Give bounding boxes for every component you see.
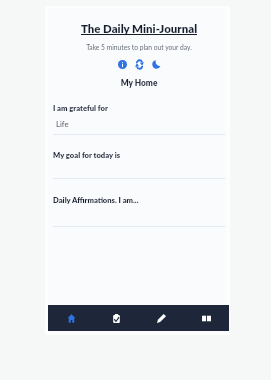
staticText: Daily Affirmations. I am... <box>53 195 139 204</box>
button[interactable]: Tasks <box>94 305 139 331</box>
button[interactable]: Information <box>118 60 127 69</box>
staticText: My goal for today is <box>53 150 121 159</box>
button[interactable]: Daily Affirmations. I am... <box>53 195 139 204</box>
staticText: The Daily Mini-Journal <box>48 22 230 36</box>
staticText: My Home <box>48 78 230 88</box>
button[interactable]: I am grateful for <box>53 103 108 112</box>
button[interactable]: Dark mode <box>152 60 161 69</box>
button[interactable]: The Daily Mini-Journal <box>48 22 230 36</box>
button[interactable]: Life <box>56 119 69 128</box>
staticText: Life <box>56 119 69 128</box>
staticText: I am grateful for <box>53 103 108 112</box>
button[interactable]: Journal <box>184 305 229 331</box>
button[interactable]: Notes <box>139 305 184 331</box>
button[interactable]: My goal for today is <box>53 150 121 159</box>
button[interactable]: Refresh <box>135 60 144 69</box>
button[interactable]: Home <box>48 305 94 331</box>
staticText: Take 5 minutes to plan out your day. <box>48 43 230 51</box>
